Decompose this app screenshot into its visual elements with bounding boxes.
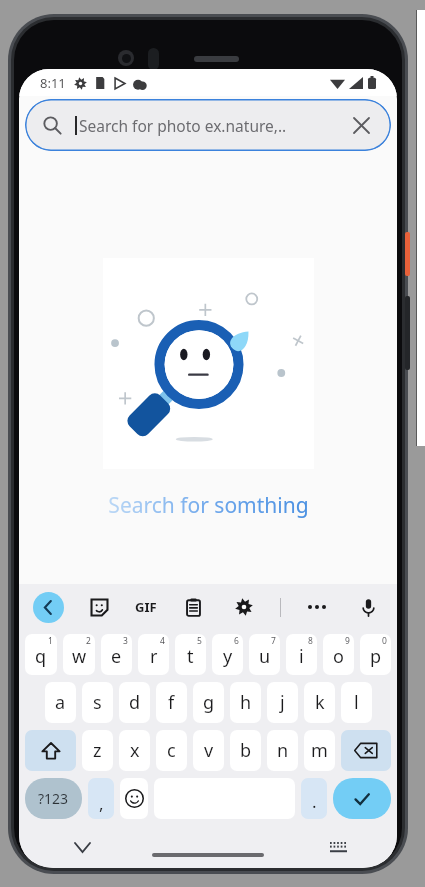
button[interactable]: t [175, 634, 206, 675]
button[interactable]: Voice input [353, 592, 383, 622]
staticText: u [259, 644, 271, 669]
button[interactable]: u [249, 634, 280, 675]
staticText: j [280, 690, 285, 715]
staticText: n [277, 738, 289, 763]
staticText: 9 [345, 635, 350, 647]
staticText: i [299, 644, 304, 669]
button[interactable]: GIF [135, 592, 157, 622]
button[interactable]: p [360, 634, 391, 675]
staticText: r [150, 644, 158, 669]
staticText: a [55, 690, 66, 715]
button[interactable]: ?123 [25, 778, 82, 819]
staticText: g [203, 690, 215, 715]
staticText: h [240, 690, 252, 715]
staticText: 8 [308, 635, 313, 647]
staticText: q [35, 644, 47, 669]
staticText: d [129, 690, 141, 715]
button[interactable]: g [193, 682, 224, 723]
button[interactable]: j [267, 682, 298, 723]
staticText: . [312, 790, 317, 813]
staticText: k [315, 690, 325, 715]
button[interactable]: x [119, 730, 150, 771]
button[interactable]: Settings [229, 592, 259, 622]
staticText: s [93, 690, 102, 715]
staticText: GIF [135, 598, 157, 616]
button[interactable]: Search for photo ex.nature,.. [25, 99, 391, 151]
button[interactable]: Change keyboard [323, 832, 353, 862]
staticText: w [72, 644, 87, 669]
button[interactable]: o [323, 634, 354, 675]
button[interactable]: Backspace [341, 730, 391, 771]
button[interactable]: b [230, 730, 261, 771]
staticText: l [354, 690, 359, 715]
staticText: 7 [271, 635, 276, 647]
staticText: t [187, 644, 194, 669]
staticText: Search for photo ex.nature,.. [79, 115, 287, 136]
button[interactable]: i [286, 634, 317, 675]
staticText: p [370, 644, 382, 669]
staticText: 5 [197, 635, 202, 647]
staticText: 6 [234, 635, 239, 647]
button[interactable]: m [304, 730, 335, 771]
button[interactable]: k [304, 682, 335, 723]
button[interactable]: w [63, 634, 95, 675]
button[interactable]: s [82, 682, 113, 723]
button[interactable]: More options [302, 592, 332, 622]
button[interactable]: Hide keyboard [67, 832, 97, 862]
button[interactable]: n [267, 730, 298, 771]
button[interactable]: Stickers [84, 592, 114, 622]
staticText: c [167, 738, 176, 763]
staticText: b [240, 738, 252, 763]
button[interactable]: q [25, 634, 57, 675]
staticText: y [223, 644, 233, 669]
staticText: 3 [123, 635, 128, 647]
staticText: ?123 [38, 789, 69, 808]
staticText: f [168, 690, 175, 715]
button[interactable]: c [156, 730, 187, 771]
button[interactable]: Back [33, 592, 64, 623]
button[interactable]: Shift [25, 730, 76, 771]
button[interactable]: a [45, 682, 76, 723]
button[interactable]: Emoji [120, 778, 148, 819]
staticText: x [130, 738, 140, 763]
button[interactable]: v [193, 730, 224, 771]
staticText: Search for somthing [108, 491, 309, 520]
button[interactable]: f [156, 682, 187, 723]
staticText: 8:11 [40, 74, 66, 92]
button[interactable]: z [82, 730, 113, 771]
button[interactable]: y [212, 634, 243, 675]
staticText: m [311, 738, 328, 763]
button[interactable]: e [101, 634, 132, 675]
button[interactable]: h [230, 682, 261, 723]
staticText: o [333, 644, 344, 669]
staticText: e [111, 644, 122, 669]
staticText: v [204, 738, 214, 763]
staticText: 0 [382, 635, 387, 647]
button[interactable]: r [138, 634, 169, 675]
staticText: 2 [86, 635, 91, 647]
button[interactable]: Enter [333, 778, 391, 819]
staticText: 4 [160, 635, 165, 647]
staticText: 1 [48, 635, 53, 647]
staticText: , [99, 792, 104, 815]
button[interactable]: , [88, 778, 114, 819]
button[interactable]: . [301, 778, 327, 819]
button[interactable]: Clipboard [178, 592, 208, 622]
button[interactable]: Clear search [349, 113, 373, 137]
staticText: z [93, 738, 102, 763]
button[interactable]: d [119, 682, 150, 723]
button[interactable]: l [341, 682, 372, 723]
